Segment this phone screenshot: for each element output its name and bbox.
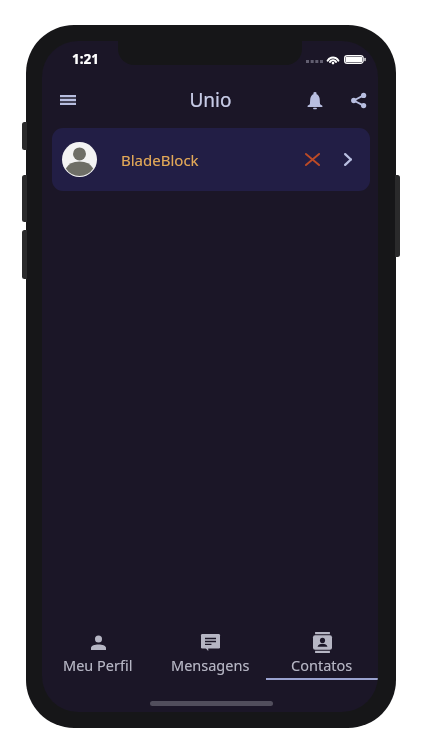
button[interactable]: Share: [338, 83, 378, 117]
button[interactable]: Contatos: [266, 628, 378, 680]
button[interactable]: Notifications: [295, 83, 335, 117]
staticText: BladeBlock: [121, 150, 199, 170]
staticText: Mensagens: [171, 655, 250, 675]
button[interactable]: BladeBlock: [52, 128, 370, 191]
button[interactable]: Meu Perfil: [42, 628, 154, 680]
staticText: Unio: [189, 87, 232, 113]
staticText: Contatos: [291, 655, 353, 675]
staticText: 1:21: [72, 50, 99, 68]
button[interactable]: Remove contact: [295, 142, 330, 177]
button[interactable]: Menu: [48, 83, 88, 117]
button[interactable]: Open contact: [330, 142, 365, 177]
button[interactable]: Mensagens: [154, 628, 266, 680]
staticText: Meu Perfil: [63, 655, 133, 675]
